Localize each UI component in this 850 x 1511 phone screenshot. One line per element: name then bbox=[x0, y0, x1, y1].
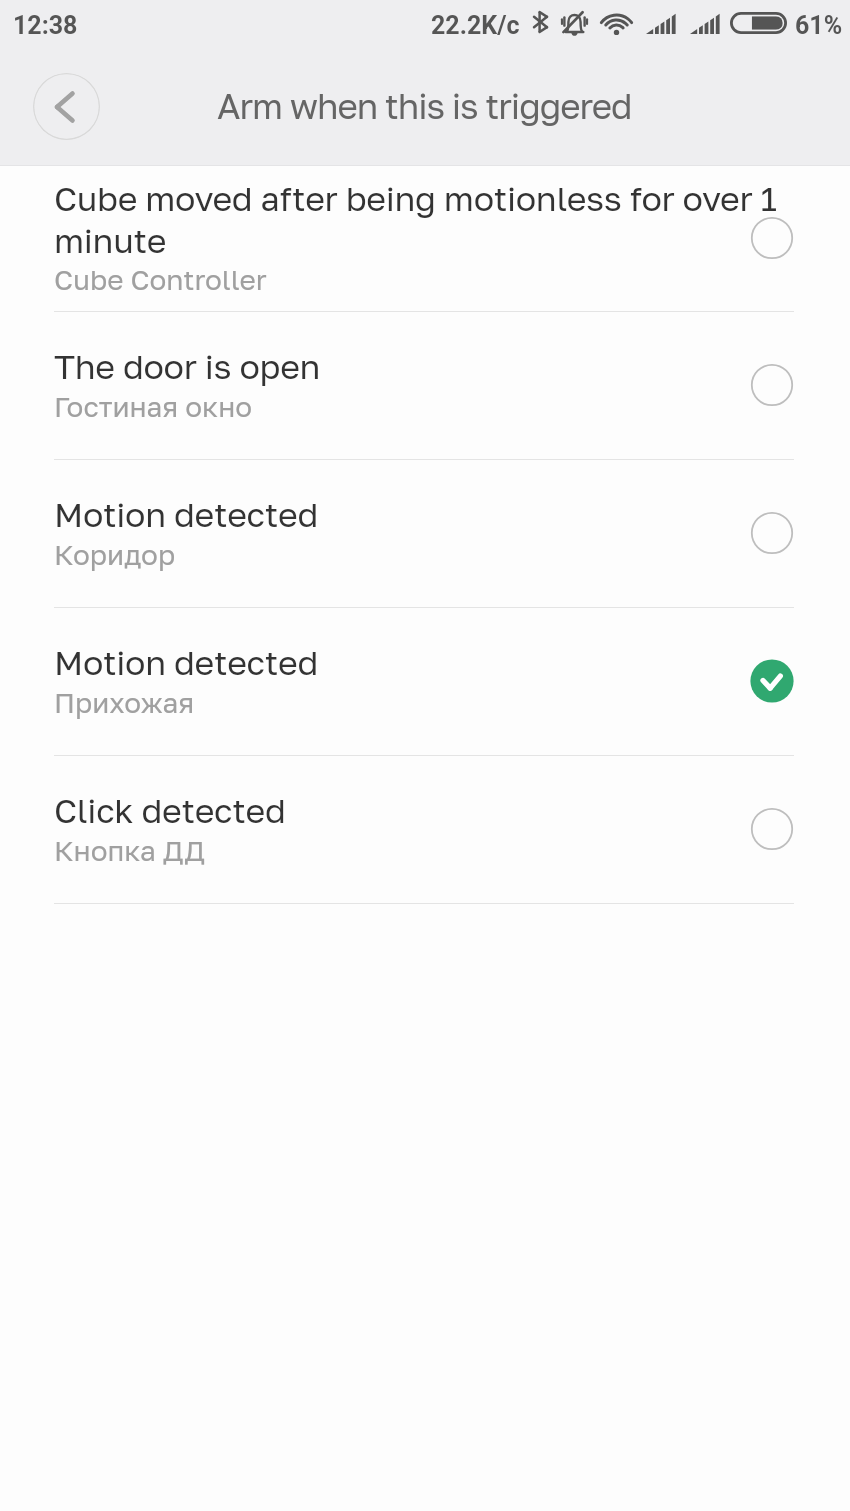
staticText: Коридор bbox=[54, 538, 176, 572]
staticText: Кнопка ДД bbox=[54, 834, 205, 868]
button[interactable]: Motion detected bbox=[0, 460, 850, 608]
button[interactable]: Not selected bbox=[742, 208, 802, 268]
button[interactable]: Selected bbox=[742, 651, 802, 711]
button[interactable]: Not selected bbox=[742, 503, 802, 563]
button[interactable]: Not selected bbox=[742, 799, 802, 859]
staticText: 22.2K/c bbox=[431, 11, 520, 40]
staticText: Click detected bbox=[54, 790, 286, 831]
staticText: Гостиная окно bbox=[54, 390, 253, 424]
button[interactable]: Motion detected bbox=[0, 608, 850, 756]
button[interactable]: Back bbox=[33, 73, 100, 140]
button[interactable]: Not selected bbox=[742, 355, 802, 415]
staticText: Cube moved after being motionless for ov… bbox=[54, 178, 795, 261]
staticText: Cube Controller bbox=[54, 263, 267, 297]
staticText: Прихожая bbox=[54, 686, 195, 720]
staticText: 12:38 bbox=[13, 11, 78, 40]
button[interactable]: The door is open bbox=[0, 312, 850, 460]
button[interactable]: Cube moved after being motionless for ov… bbox=[0, 166, 850, 312]
staticText: Arm when this is triggered bbox=[217, 85, 632, 127]
staticText: Motion detected bbox=[54, 642, 319, 683]
staticText: 61% bbox=[795, 11, 843, 40]
staticText: Motion detected bbox=[54, 494, 319, 535]
button[interactable]: Click detected bbox=[0, 756, 850, 904]
staticText: The door is open bbox=[54, 346, 321, 387]
